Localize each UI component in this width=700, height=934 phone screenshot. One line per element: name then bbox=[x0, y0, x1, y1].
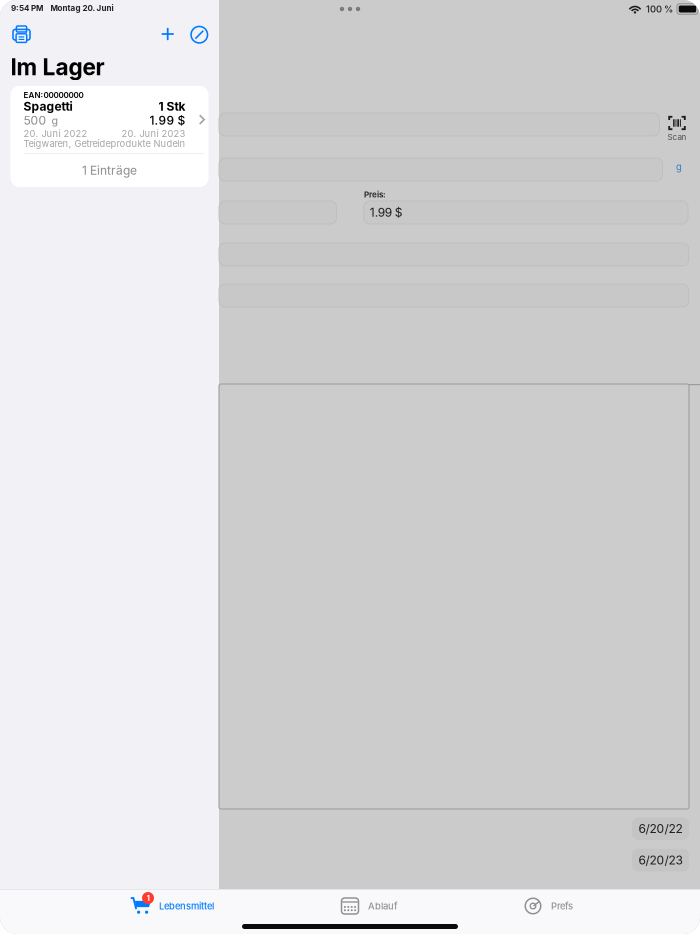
button[interactable]: 1 Einträge bbox=[10, 154, 208, 187]
staticText: Nudeln bbox=[153, 138, 185, 149]
staticText: 6/20/23 bbox=[638, 853, 682, 867]
staticText: 1 Einträge bbox=[82, 163, 137, 178]
staticText: g bbox=[51, 114, 58, 127]
staticText: Preis: bbox=[364, 190, 386, 199]
staticText: Spagetti bbox=[23, 99, 72, 114]
button[interactable]: EAN:00000000 bbox=[10, 86, 208, 153]
staticText: 6/20/22 bbox=[638, 822, 682, 836]
button[interactable]: Add bbox=[154, 20, 182, 48]
staticText: Lebensmittel bbox=[159, 900, 214, 911]
staticText: 500 bbox=[23, 113, 46, 128]
button[interactable]: Prefs bbox=[521, 891, 573, 921]
staticText: 1 Stk bbox=[158, 99, 185, 114]
staticText: g bbox=[676, 161, 682, 172]
staticText: 1 bbox=[146, 893, 149, 903]
staticText: Scan bbox=[667, 132, 686, 142]
staticText: 1.99 $ bbox=[370, 205, 403, 220]
staticText: EAN:00000000 bbox=[23, 90, 83, 100]
staticText: Im Lager bbox=[10, 54, 104, 80]
staticText: 20. Juni 2023 bbox=[121, 128, 185, 139]
staticText: Teigwaren, Getreideprodukte bbox=[23, 138, 150, 149]
button[interactable]: Print bbox=[7, 20, 37, 48]
staticText: 100 % bbox=[646, 3, 673, 14]
button[interactable]: 6/20/23 bbox=[632, 849, 689, 871]
staticText: Prefs bbox=[551, 900, 573, 911]
button[interactable]: 1 bbox=[129, 891, 214, 921]
staticText: 20. Juni 2022 bbox=[23, 128, 87, 139]
staticText: 1.99 $ bbox=[149, 113, 185, 128]
button[interactable]: Ablauf bbox=[338, 891, 398, 921]
button[interactable]: 6/20/22 bbox=[632, 817, 689, 840]
staticText: Ablauf bbox=[368, 900, 398, 911]
staticText: 9:54 PM bbox=[11, 3, 43, 13]
staticText: Montag 20. Juni bbox=[50, 3, 113, 13]
button[interactable]: Filter bbox=[185, 21, 213, 49]
